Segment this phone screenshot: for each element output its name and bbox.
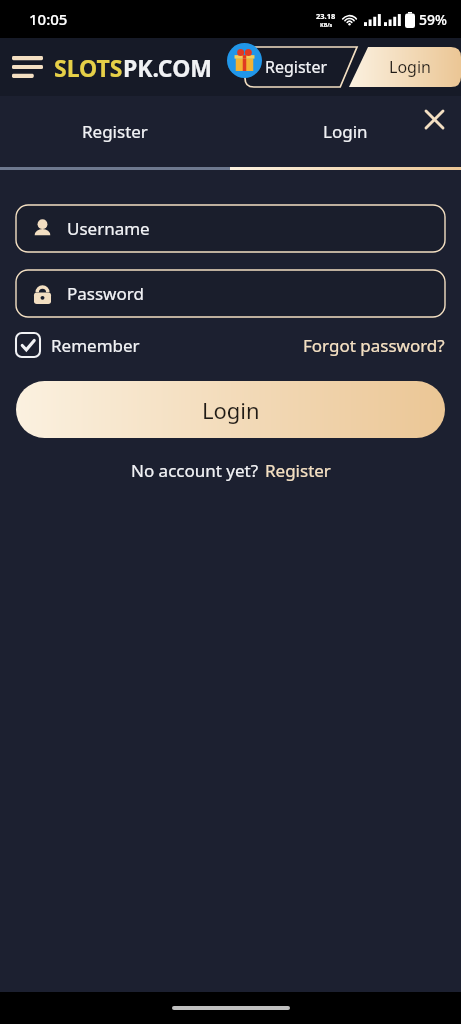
button[interactable]: Login — [349, 47, 461, 87]
staticText: 23.18 — [316, 11, 336, 21]
staticText: PK.COM — [123, 52, 213, 83]
button[interactable]: Menu — [4, 44, 50, 90]
staticText: Username — [67, 217, 150, 240]
staticText: KB/s — [320, 21, 333, 28]
staticText: Login — [202, 395, 260, 425]
button[interactable]: Register — [245, 47, 357, 87]
staticText: Password — [67, 282, 144, 305]
button[interactable]: Close — [415, 100, 453, 138]
button[interactable]: Login — [230, 96, 461, 167]
staticText: No account yet? — [131, 459, 259, 482]
staticText: 59% — [419, 10, 447, 29]
button[interactable]: Register — [0, 96, 230, 167]
staticText: Forgot password? — [303, 334, 445, 357]
staticText: Register — [265, 56, 328, 78]
staticText: Register — [265, 459, 331, 482]
button[interactable]: Login — [16, 381, 445, 438]
button[interactable]: Password — [16, 270, 445, 317]
button[interactable]: Register — [265, 459, 331, 482]
staticText: Register — [82, 120, 148, 143]
button[interactable]: Forgot password? — [303, 334, 445, 357]
staticText: Login — [323, 120, 368, 143]
button[interactable]: Username — [16, 205, 445, 252]
button[interactable]: Gift bonus — [227, 43, 262, 78]
staticText: SLOTS — [54, 52, 123, 83]
staticText: 10:05 — [29, 9, 68, 29]
staticText: Remember — [51, 334, 140, 357]
staticText: Login — [389, 56, 431, 78]
button[interactable]: Remember — [16, 333, 140, 357]
